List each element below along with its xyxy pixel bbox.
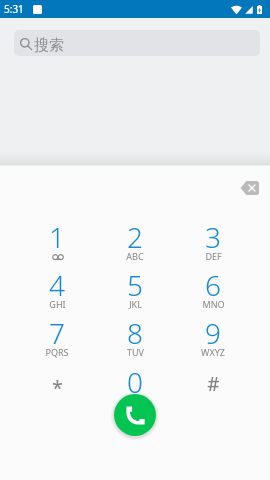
button[interactable]: 搜索 bbox=[14, 30, 260, 56]
staticText: ABC bbox=[126, 250, 144, 262]
button[interactable]: 5 bbox=[96, 266, 174, 304]
staticText: 搜索 bbox=[34, 36, 64, 55]
staticText: 7 bbox=[49, 314, 65, 352]
button[interactable]: * bbox=[18, 362, 96, 388]
staticText: # bbox=[207, 371, 220, 397]
staticText: 9 bbox=[205, 314, 221, 352]
staticText: 2 bbox=[127, 218, 143, 256]
button[interactable]: 4 bbox=[18, 266, 96, 304]
button[interactable]: Call bbox=[114, 394, 156, 436]
button[interactable]: 7 bbox=[18, 314, 96, 352]
button[interactable]: 1 bbox=[18, 218, 96, 256]
button[interactable]: # bbox=[174, 362, 252, 388]
staticText: DEF bbox=[205, 250, 222, 262]
staticText: 5:31 bbox=[4, 2, 24, 16]
staticText: MNO bbox=[202, 298, 225, 310]
staticText: WXYZ bbox=[201, 346, 225, 358]
staticText: GHI bbox=[49, 298, 66, 310]
button[interactable]: 9 bbox=[174, 314, 252, 352]
staticText: 4 bbox=[49, 266, 65, 304]
button[interactable]: 3 bbox=[174, 218, 252, 256]
staticText: 3 bbox=[205, 218, 221, 256]
staticText: 0 bbox=[127, 363, 143, 401]
staticText: 6 bbox=[205, 266, 221, 304]
staticText: * bbox=[52, 375, 63, 401]
button[interactable]: 2 bbox=[96, 218, 174, 256]
staticText: TUV bbox=[127, 346, 144, 358]
staticText: 8 bbox=[127, 314, 143, 352]
button[interactable]: 6 bbox=[174, 266, 252, 304]
button[interactable]: 8 bbox=[96, 314, 174, 352]
staticText: 1 bbox=[49, 218, 65, 256]
staticText: 5 bbox=[127, 266, 143, 304]
button[interactable]: Backspace bbox=[237, 176, 261, 200]
staticText: JKL bbox=[129, 298, 142, 310]
staticText: PQRS bbox=[45, 346, 69, 358]
button[interactable]: 0 bbox=[96, 362, 174, 400]
